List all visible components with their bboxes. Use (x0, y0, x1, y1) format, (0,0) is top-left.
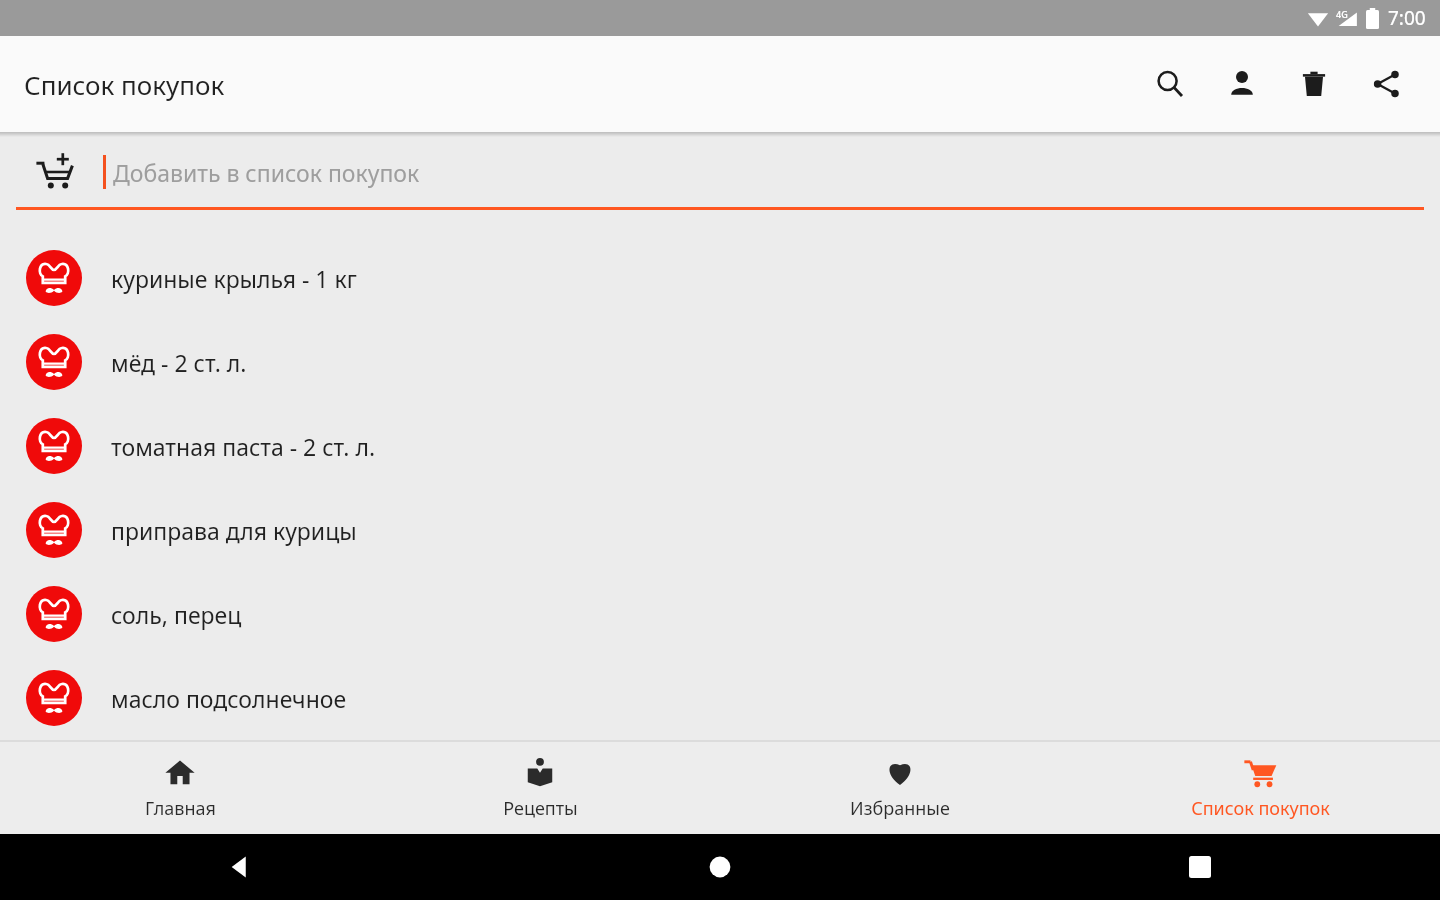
staticText: томатная паста - 2 ст. л. (111, 431, 376, 462)
button[interactable]: Delete (1278, 48, 1350, 120)
button[interactable]: Добавить в список покупок (0, 137, 1440, 207)
staticText: Список покупок (24, 67, 225, 102)
staticText: 4G (1336, 8, 1348, 20)
staticText: Главная (145, 796, 216, 821)
button[interactable]: Share (1350, 48, 1422, 120)
button[interactable]: Home (697, 844, 743, 890)
staticText: соль, перец (111, 599, 242, 630)
staticText: Избранные (850, 796, 950, 821)
staticText: мёд - 2 ст. л. (111, 347, 247, 378)
staticText: Рецепты (503, 796, 578, 821)
button[interactable]: Избранные (720, 747, 1080, 829)
staticText: 7:00 (1388, 5, 1426, 31)
button[interactable]: Search (1134, 48, 1206, 120)
staticText: приправа для курицы (111, 515, 357, 546)
button[interactable]: куриные крылья - 1 кг (0, 236, 1440, 320)
staticText: масло подсолнечное (111, 683, 347, 714)
button[interactable]: Recent apps (1177, 844, 1223, 890)
staticText: куриные крылья - 1 кг (111, 263, 357, 294)
button[interactable]: Back (217, 844, 263, 890)
staticText: Добавить в список покупок (113, 157, 420, 188)
button[interactable]: Рецепты (360, 747, 720, 829)
button[interactable]: томатная паста - 2 ст. л. (0, 404, 1440, 488)
button[interactable]: Список покупок (1080, 747, 1440, 829)
button[interactable]: Главная (0, 747, 360, 829)
button[interactable]: масло подсолнечное (0, 656, 1440, 740)
button[interactable]: соль, перец (0, 572, 1440, 656)
button[interactable]: мёд - 2 ст. л. (0, 320, 1440, 404)
button[interactable]: приправа для курицы (0, 488, 1440, 572)
button[interactable]: Account (1206, 48, 1278, 120)
staticText: Список покупок (1191, 796, 1330, 821)
